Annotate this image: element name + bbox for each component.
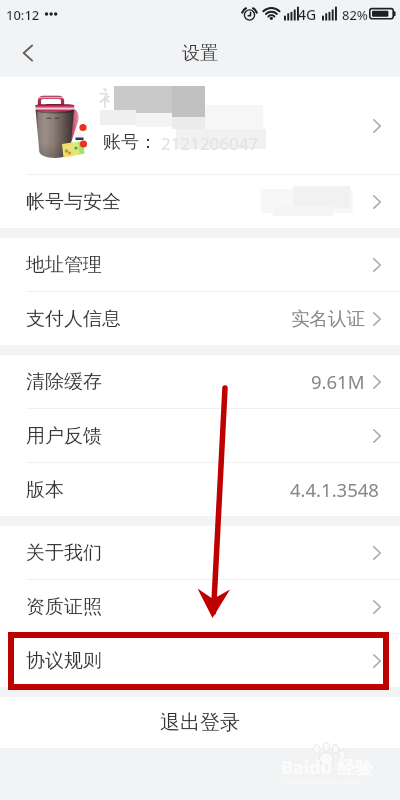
staticText: 4G — [298, 5, 317, 24]
staticText: 版本 — [26, 478, 64, 502]
button[interactable]: 地址管理 — [0, 238, 400, 291]
staticText: 9.61M — [311, 369, 365, 394]
staticText: 退出登录 — [160, 710, 240, 735]
staticText: 设置 — [182, 42, 218, 65]
button[interactable]: 协议规则 — [0, 634, 400, 687]
button[interactable]: 退出登录 — [0, 697, 400, 748]
button[interactable]: 关于我们 — [0, 526, 400, 579]
button[interactable]: 支付人信息 — [0, 292, 400, 345]
staticText: 衤匕 — [99, 85, 141, 111]
staticText: Baidu 经验 — [281, 755, 373, 780]
staticText: 82% — [342, 6, 368, 24]
button[interactable]: Back — [0, 30, 46, 76]
staticText: 关于我们 — [26, 541, 102, 565]
button[interactable]: 版本 — [0, 463, 400, 516]
button[interactable]: 清除缓存 — [0, 355, 400, 408]
staticText: 4.4.1.3548 — [290, 477, 379, 502]
staticText: 清除缓存 — [26, 370, 102, 394]
button[interactable]: 帐号与安全 — [0, 175, 400, 228]
staticText: 支付人信息 — [26, 307, 121, 331]
staticText: 10:12 — [6, 6, 40, 24]
button[interactable]: 资质证照 — [0, 580, 400, 633]
staticText: 2121206047 — [161, 132, 259, 155]
staticText: 用户反馈 — [26, 424, 102, 448]
button[interactable]: 衤匕 — [0, 77, 400, 174]
staticText: 账号： — [103, 131, 157, 154]
staticText: 协议规则 — [26, 649, 102, 673]
staticText: 帐号与安全 — [26, 190, 121, 214]
button[interactable]: 用户反馈 — [0, 409, 400, 462]
staticText: 实名认证 — [291, 307, 365, 330]
staticText: 资质证照 — [26, 595, 102, 619]
staticText: 地址管理 — [26, 253, 102, 277]
